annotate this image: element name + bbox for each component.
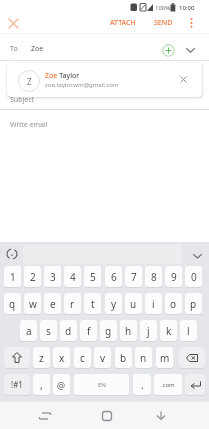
staticText: 9	[171, 270, 177, 284]
button[interactable]: 4	[64, 266, 81, 287]
button[interactable]	[5, 15, 21, 31]
staticText: EN	[98, 381, 106, 389]
button[interactable]: j	[140, 320, 157, 341]
button[interactable]: .com	[154, 374, 182, 395]
button[interactable]: Z	[7, 63, 202, 97]
staticText: v	[100, 351, 106, 365]
staticText: ,	[40, 378, 43, 392]
staticText: n	[140, 351, 147, 365]
button[interactable]: w	[24, 293, 41, 314]
button[interactable]: @	[53, 374, 70, 395]
button[interactable]: v	[94, 347, 111, 368]
button[interactable]: 2	[24, 266, 41, 287]
staticText: e	[50, 297, 56, 311]
button[interactable]: s	[40, 320, 57, 341]
button[interactable]: e	[44, 293, 61, 314]
button[interactable]: f	[80, 320, 97, 341]
staticText: .	[141, 378, 144, 392]
button[interactable]: z	[33, 347, 50, 368]
staticText: p	[190, 297, 197, 311]
button[interactable]: .	[133, 374, 151, 395]
button[interactable]: EN	[74, 374, 129, 395]
button[interactable]: 0	[185, 266, 202, 287]
button[interactable]: 5	[84, 266, 101, 287]
button[interactable]: q	[4, 293, 21, 314]
button[interactable]: r	[64, 293, 81, 314]
staticText: ATTACH	[110, 18, 136, 28]
button[interactable]: 7	[125, 266, 142, 287]
button[interactable]: u	[125, 293, 142, 314]
button[interactable]	[183, 43, 197, 57]
staticText: Zoe Taylor	[45, 71, 80, 81]
button[interactable]	[185, 374, 205, 395]
staticText: 3	[50, 270, 56, 284]
staticText: 0	[191, 270, 197, 284]
button[interactable]	[184, 15, 198, 31]
staticText: Subject	[10, 95, 35, 105]
staticText: f	[87, 324, 91, 338]
staticText: 5	[90, 270, 96, 284]
button[interactable]: m	[156, 347, 173, 368]
button[interactable]	[94, 404, 120, 428]
button[interactable]: ATTACH	[110, 16, 136, 30]
staticText: 7	[131, 270, 137, 284]
button[interactable]: 9	[165, 266, 182, 287]
button[interactable]: 8	[145, 266, 162, 287]
staticText: 1	[10, 270, 16, 284]
staticText: w	[29, 297, 37, 311]
staticText: m	[160, 351, 170, 365]
button[interactable]: 6	[105, 266, 122, 287]
staticText: r	[70, 297, 75, 311]
staticText: h	[125, 324, 132, 338]
button[interactable]: o	[165, 293, 182, 314]
button[interactable]: !#1	[4, 374, 30, 395]
staticText: y	[111, 297, 117, 311]
staticText: zoe.taylor.wm@gmail.com	[45, 81, 119, 89]
button[interactable]: d	[60, 320, 77, 341]
staticText: 6	[111, 270, 117, 284]
staticText: l	[187, 324, 190, 338]
button[interactable]	[161, 43, 175, 57]
button[interactable]: g	[100, 320, 117, 341]
button[interactable]	[175, 71, 191, 87]
button[interactable]: y	[105, 293, 122, 314]
button[interactable]: 1	[4, 266, 21, 287]
button[interactable]	[148, 404, 174, 428]
staticText: q	[9, 297, 16, 311]
button[interactable]	[32, 404, 58, 428]
staticText: g	[105, 324, 112, 338]
button[interactable]: t	[84, 293, 101, 314]
button[interactable]: 3	[44, 266, 61, 287]
staticText: 10:00	[179, 4, 195, 12]
staticText: o	[170, 297, 177, 311]
button[interactable]: SEND	[154, 16, 173, 30]
button[interactable]: x	[53, 347, 70, 368]
button[interactable]	[179, 347, 205, 368]
button[interactable]: c	[74, 347, 91, 368]
staticText: z	[39, 351, 44, 365]
staticText: t	[91, 297, 95, 311]
button[interactable]: l	[180, 320, 197, 341]
button[interactable]: h	[120, 320, 137, 341]
staticText: a	[26, 324, 32, 338]
staticText: x	[59, 351, 65, 365]
staticText: 8	[151, 270, 157, 284]
staticText: Zoe	[31, 44, 44, 54]
staticText: .com	[161, 381, 175, 389]
button[interactable]	[2, 244, 21, 263]
staticText: To	[10, 44, 18, 54]
button[interactable]: k	[160, 320, 177, 341]
staticText: 2	[30, 270, 36, 284]
button[interactable]: i	[145, 293, 162, 314]
staticText: d	[65, 324, 72, 338]
staticText: 4	[70, 270, 76, 284]
button[interactable]: b	[115, 347, 132, 368]
button[interactable]: ,	[33, 374, 50, 395]
staticText: i	[152, 297, 155, 311]
staticText: k	[166, 324, 172, 338]
button[interactable]: p	[185, 293, 202, 314]
button[interactable]: n	[135, 347, 152, 368]
button[interactable]: a	[20, 320, 37, 341]
button[interactable]	[190, 247, 204, 265]
button[interactable]	[4, 347, 30, 368]
